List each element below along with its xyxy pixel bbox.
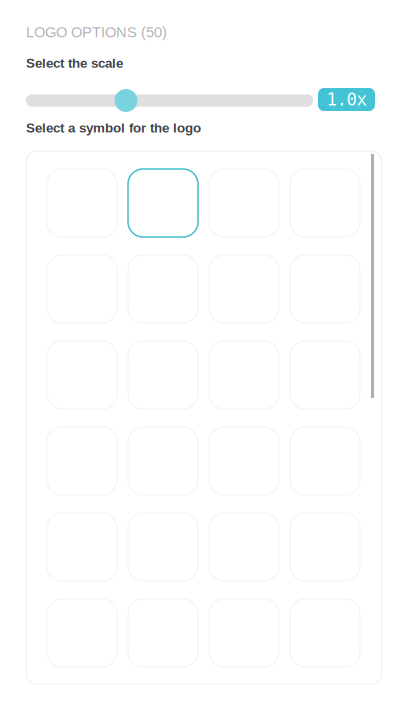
staticText: LOGO OPTIONS (50)	[26, 24, 167, 40]
button[interactable]: Selected symbol	[128, 169, 198, 237]
button[interactable]: Scale slider	[114, 89, 137, 112]
staticText: 1.0x	[326, 89, 366, 110]
staticText: Select a symbol for the logo	[26, 120, 201, 135]
staticText: Select the scale	[26, 56, 123, 70]
